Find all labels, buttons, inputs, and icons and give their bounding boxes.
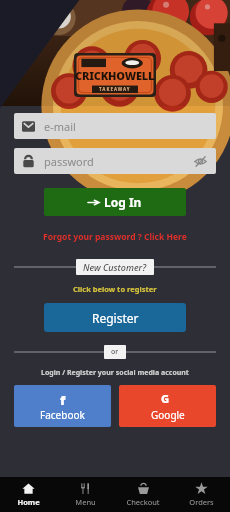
staticText: Facebook xyxy=(40,408,85,422)
button[interactable]: Orders xyxy=(172,477,230,512)
button[interactable]: f xyxy=(14,385,111,427)
staticText: password xyxy=(44,154,94,169)
staticText: Google xyxy=(151,408,185,422)
staticText: Checkout xyxy=(126,497,160,507)
staticText: e-mail xyxy=(44,119,76,134)
staticText: f xyxy=(60,391,66,405)
staticText: Forgot your password ? Click Here xyxy=(43,231,187,243)
staticText: G+ xyxy=(161,391,175,405)
button[interactable]: Menu xyxy=(57,477,114,512)
staticText: Click below to register xyxy=(73,284,157,294)
button[interactable]: password xyxy=(14,148,216,174)
button[interactable]: Forgot your password ? Click Here xyxy=(41,229,189,245)
staticText: Register xyxy=(92,310,139,326)
staticText: or xyxy=(111,347,119,357)
staticText: Orders xyxy=(189,497,214,507)
staticText: Login / Register your social media accou… xyxy=(41,368,189,378)
button[interactable]: Checkout xyxy=(114,477,172,512)
staticText: New Customer? xyxy=(83,261,147,273)
button[interactable]: Register xyxy=(44,303,186,332)
button[interactable]: G+ xyxy=(119,385,216,427)
button[interactable]: Log In xyxy=(44,188,186,216)
staticText: Home xyxy=(17,497,40,507)
staticText: CRICKHOWELL xyxy=(75,68,155,83)
button[interactable]: e-mail xyxy=(14,113,216,139)
button[interactable]: Home xyxy=(0,477,57,512)
button[interactable]: Show password xyxy=(192,153,208,169)
staticText: Menu xyxy=(75,497,96,507)
staticText: Log In xyxy=(104,194,142,210)
staticText: TAKEAWAY xyxy=(99,86,131,92)
